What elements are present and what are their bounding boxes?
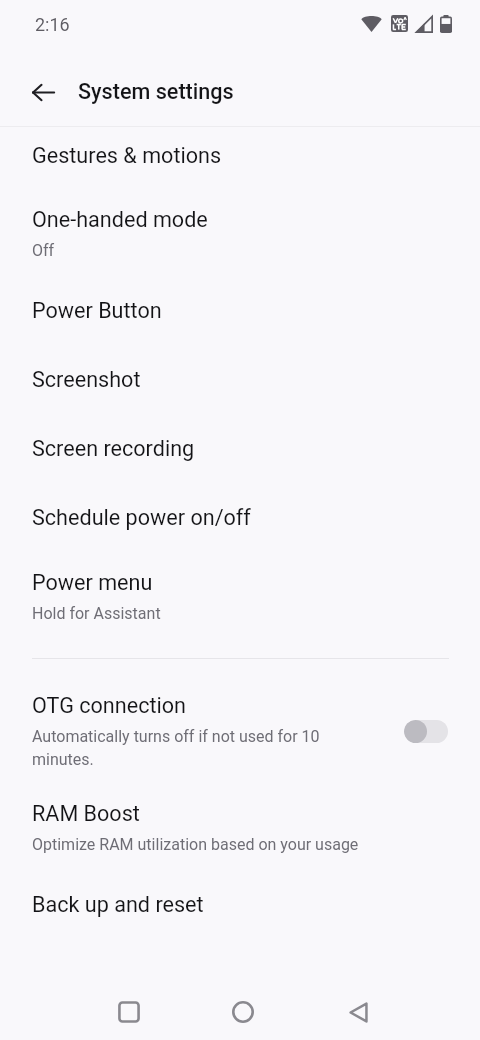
button[interactable]: Gestures & motions <box>0 130 480 186</box>
button[interactable]: Power menu <box>0 553 480 631</box>
staticText: Power menu <box>32 570 153 595</box>
staticText: Gestures & motions <box>32 143 222 168</box>
staticText: OTG connection <box>32 693 187 718</box>
button[interactable]: One-handed mode <box>0 190 480 268</box>
button[interactable]: Navigate up <box>21 70 65 114</box>
staticText: Automatically turns off if not used for … <box>32 727 320 769</box>
button[interactable]: Back <box>330 984 386 1040</box>
staticText: Optimize RAM utilization based on your u… <box>32 835 359 854</box>
staticText: Off <box>32 241 55 260</box>
staticText: System settings <box>78 79 234 104</box>
button[interactable]: OTG connection <box>0 676 480 778</box>
button[interactable]: Screen recording <box>0 422 480 478</box>
staticText: 2:16 <box>35 14 70 35</box>
staticText: Hold for Assistant <box>32 604 161 623</box>
button[interactable]: OTG connection toggle <box>404 720 448 743</box>
button[interactable]: Screenshot <box>0 353 480 409</box>
button[interactable]: RAM Boost <box>0 784 480 862</box>
staticText: Power Button <box>32 298 162 323</box>
staticText: Back up and reset <box>32 892 204 917</box>
staticText: Screenshot <box>32 367 141 392</box>
staticText: Screen recording <box>32 436 195 461</box>
button[interactable]: Power Button <box>0 284 480 340</box>
button[interactable]: Schedule power on/off <box>0 491 480 547</box>
staticText: Schedule power on/off <box>32 505 251 530</box>
staticText: RAM Boost <box>32 801 140 826</box>
button[interactable]: Recent apps <box>101 984 157 1040</box>
button[interactable]: Back up and reset <box>0 876 480 932</box>
button[interactable]: Home <box>215 984 271 1040</box>
staticText: One-handed mode <box>32 207 208 232</box>
